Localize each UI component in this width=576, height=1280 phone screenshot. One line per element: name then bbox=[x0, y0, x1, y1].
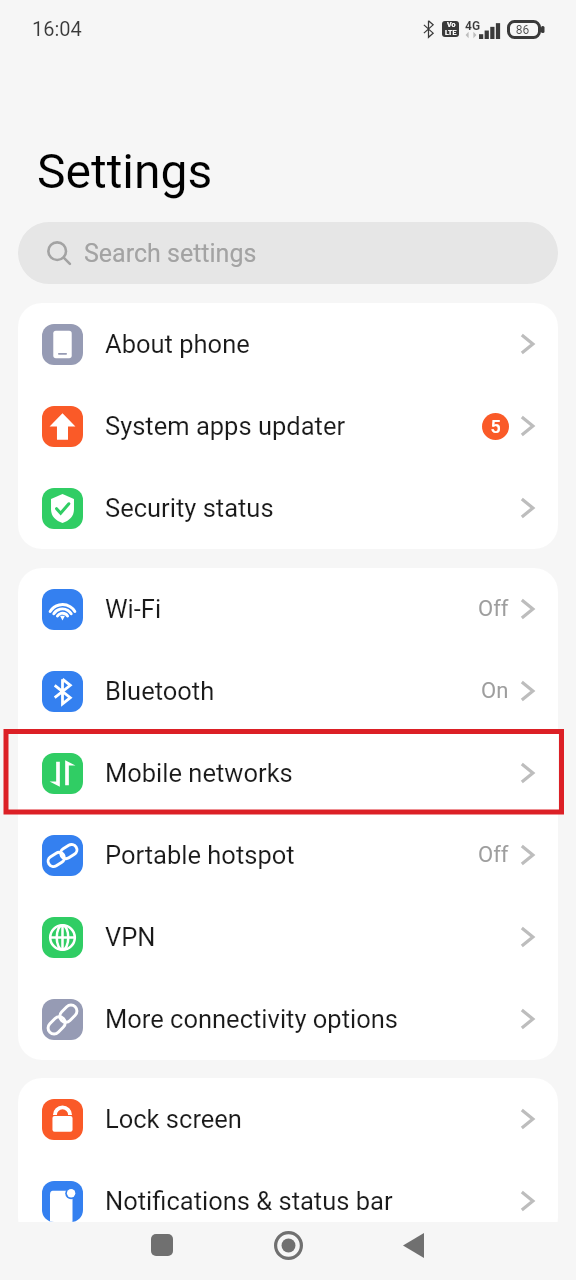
staticText: On bbox=[481, 678, 509, 704]
button[interactable]: Recent apps bbox=[132, 1216, 192, 1274]
button[interactable]: Lock screen bbox=[18, 1078, 558, 1160]
button[interactable]: Bluetooth bbox=[18, 650, 558, 732]
staticText: Vo bbox=[447, 21, 456, 29]
staticText: Settings bbox=[37, 143, 213, 199]
staticText: 86 bbox=[507, 23, 538, 37]
staticText: More connectivity options bbox=[105, 1004, 399, 1034]
button[interactable]: More connectivity options bbox=[18, 978, 558, 1060]
button[interactable]: VPN bbox=[18, 896, 558, 978]
staticText: 5 bbox=[490, 416, 501, 437]
staticText: Notifications & status bar bbox=[105, 1186, 393, 1216]
staticText: Off bbox=[478, 842, 509, 868]
staticText: Bluetooth bbox=[105, 676, 215, 706]
staticText: Lock screen bbox=[105, 1104, 242, 1134]
staticText: Search settings bbox=[84, 239, 257, 268]
staticText: Portable hotspot bbox=[105, 840, 295, 870]
staticText: VPN bbox=[105, 922, 156, 952]
staticText: About phone bbox=[105, 329, 250, 359]
button[interactable]: Portable hotspot bbox=[18, 814, 558, 896]
button[interactable]: Back bbox=[383, 1216, 443, 1274]
button[interactable]: Home bbox=[258, 1216, 318, 1274]
button[interactable]: Notifications & status bar bbox=[18, 1160, 558, 1242]
staticText: 4G bbox=[465, 19, 481, 33]
staticText: Wi-Fi bbox=[105, 594, 162, 624]
staticText: Security status bbox=[105, 493, 274, 523]
button[interactable]: System apps updater bbox=[18, 385, 558, 467]
button[interactable]: Search settings bbox=[18, 222, 558, 284]
button[interactable]: About phone bbox=[18, 303, 558, 385]
staticText: System apps updater bbox=[105, 411, 346, 441]
button[interactable]: Mobile networks bbox=[18, 732, 558, 814]
staticText: LTE bbox=[445, 29, 457, 37]
staticText: Mobile networks bbox=[105, 758, 293, 788]
staticText: 16:04 bbox=[32, 17, 82, 40]
staticText: Off bbox=[478, 596, 509, 622]
button[interactable]: Wi-Fi bbox=[18, 568, 558, 650]
button[interactable]: Security status bbox=[18, 467, 558, 549]
